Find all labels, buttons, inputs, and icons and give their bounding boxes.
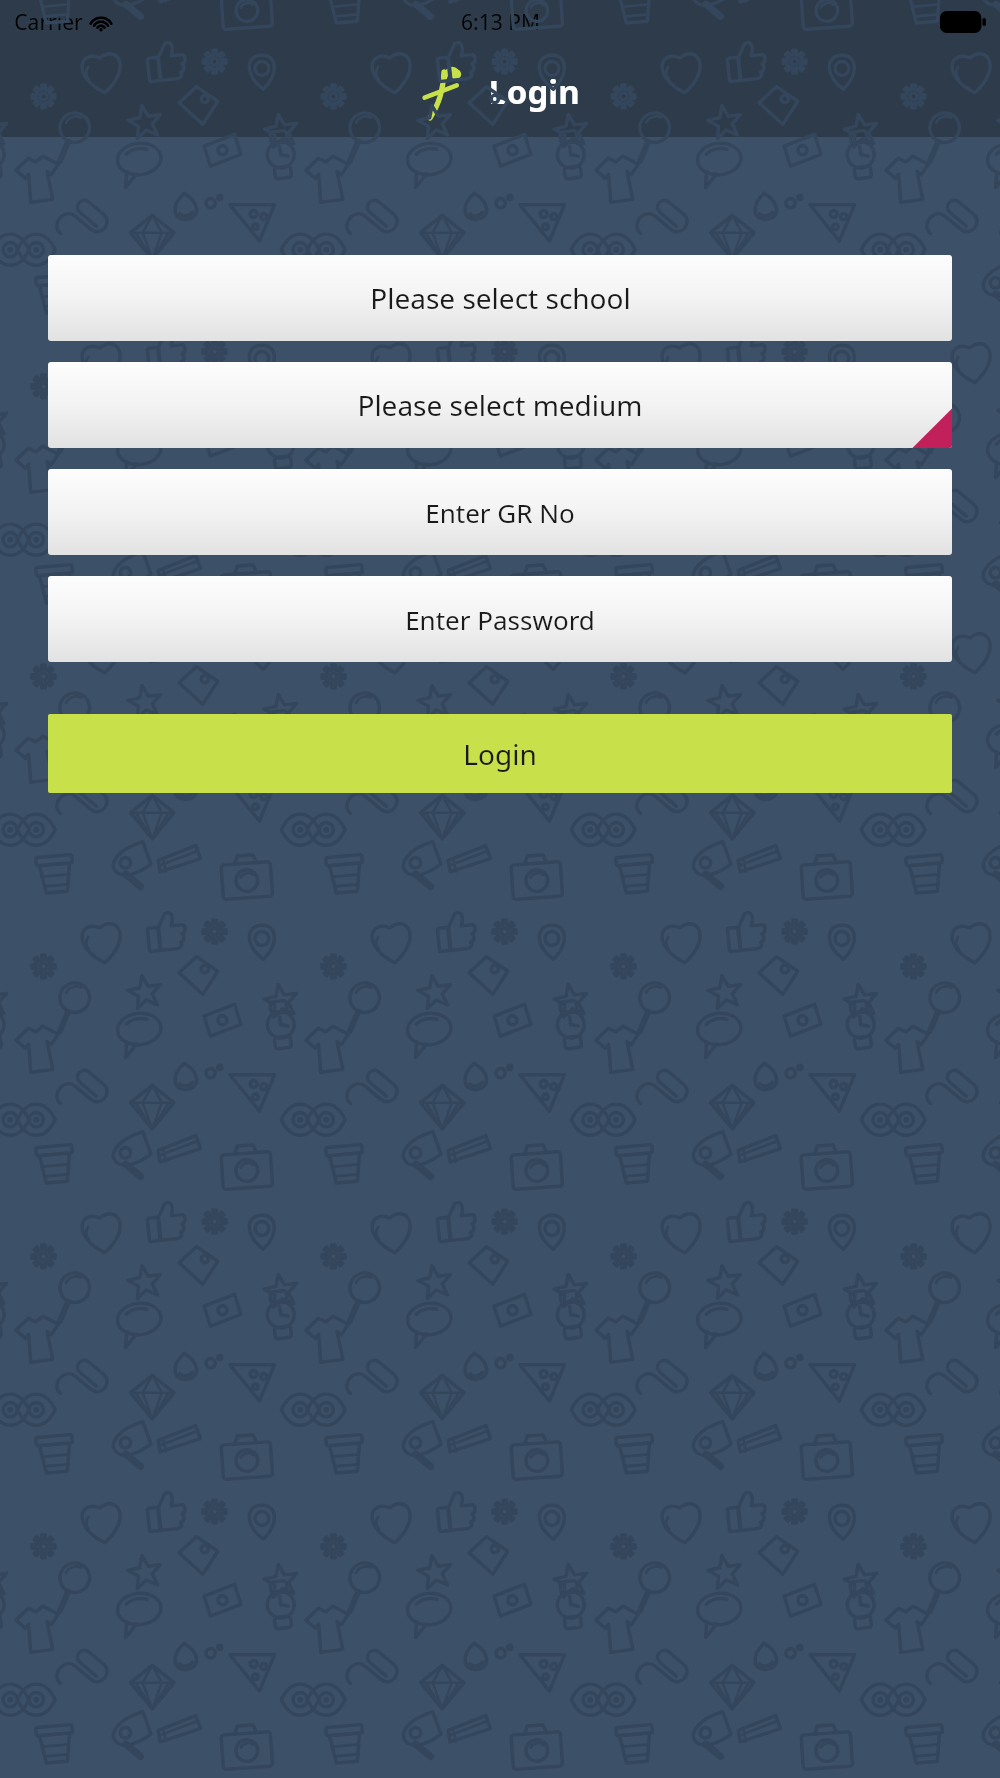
- button[interactable]: Enter Password: [48, 576, 952, 662]
- button[interactable]: Please select medium: [48, 362, 952, 448]
- staticText: Login: [463, 735, 537, 773]
- staticText: Please select medium: [357, 386, 643, 424]
- button[interactable]: Please select school: [48, 255, 952, 341]
- staticText: Enter GR No: [425, 495, 575, 530]
- staticText: Enter Password: [405, 602, 595, 637]
- button[interactable]: Login: [48, 714, 952, 793]
- button[interactable]: Enter GR No: [48, 469, 952, 555]
- staticText: Login: [488, 69, 580, 114]
- staticText: Carrier: [14, 8, 83, 37]
- staticText: 6:13 PM: [461, 8, 540, 37]
- staticText: Please select school: [370, 279, 631, 317]
